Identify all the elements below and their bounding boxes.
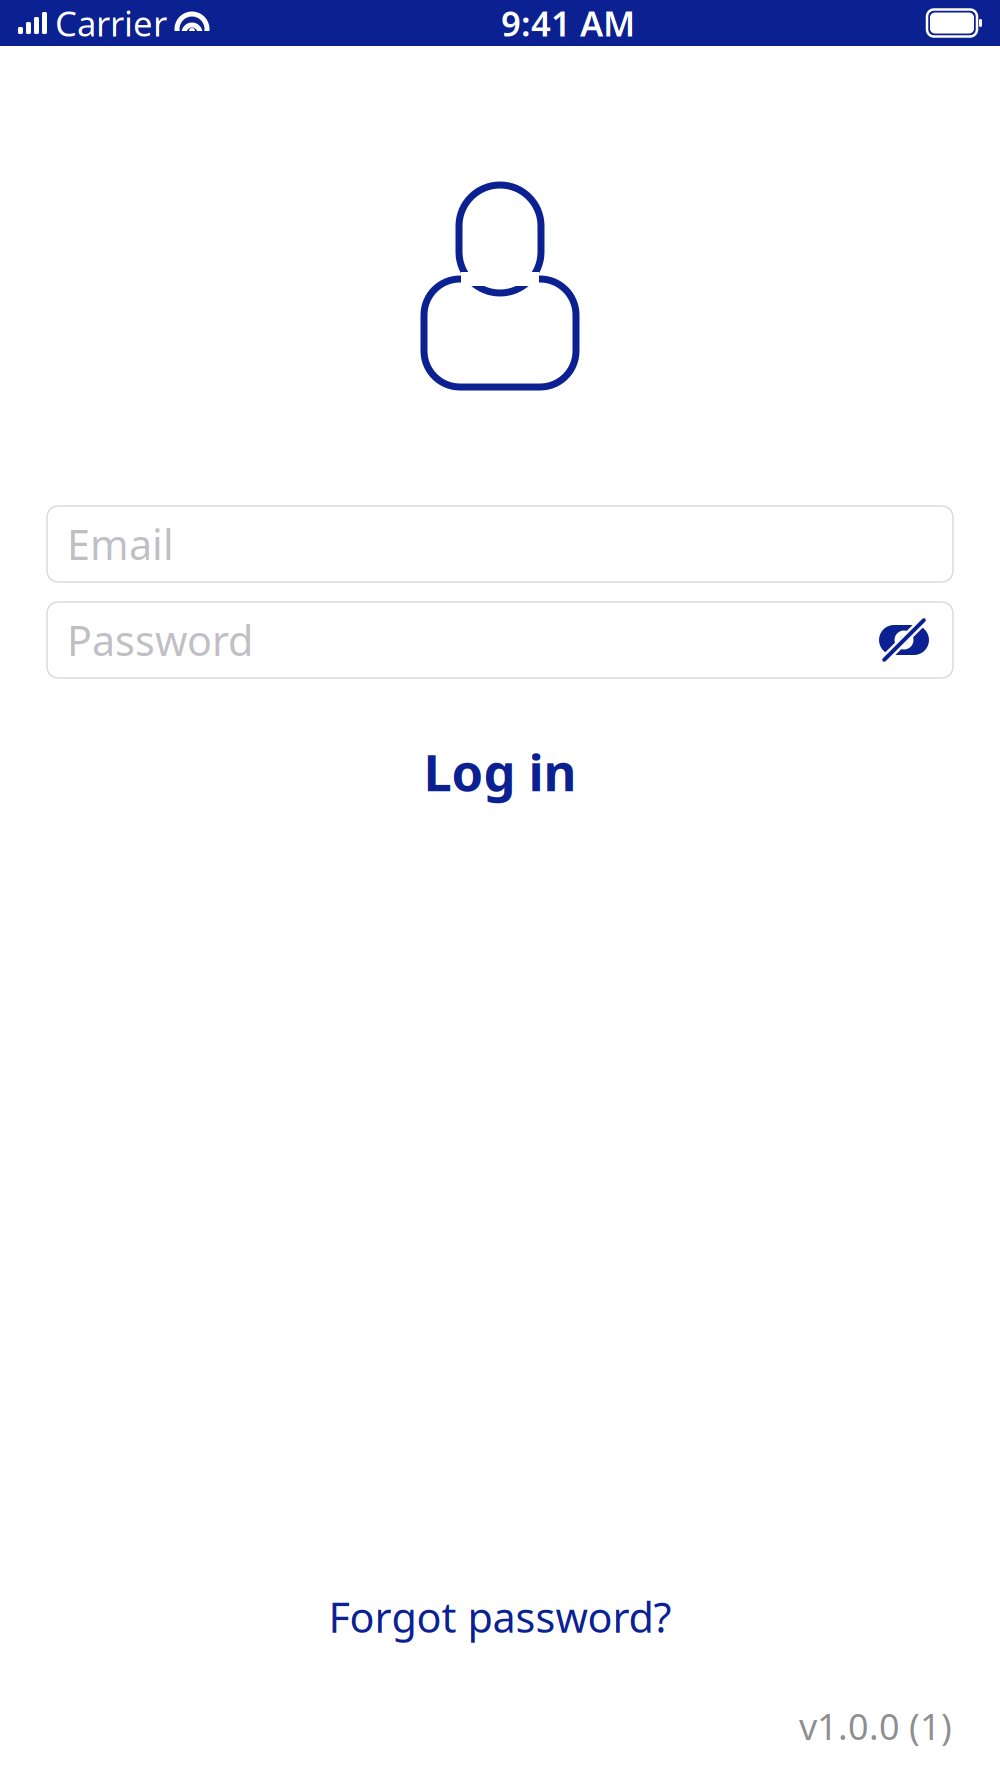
staticText: Carrier (55, 0, 167, 46)
staticText: Email (67, 517, 174, 571)
staticText: Log in (423, 738, 576, 805)
button[interactable]: Password (47, 602, 953, 678)
button[interactable]: Email (47, 506, 953, 582)
staticText: 9:41 AM (501, 0, 635, 46)
staticText: Forgot password? (328, 1589, 671, 1644)
button[interactable]: Forgot password? (304, 1579, 695, 1654)
staticText: v1.0.0 (1) (799, 1702, 952, 1750)
staticText: Password (67, 613, 253, 667)
button[interactable]: Log in (0, 716, 1000, 827)
